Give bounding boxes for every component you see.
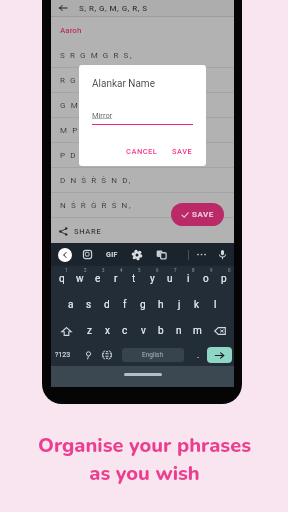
button[interactable]: More options: [195, 248, 208, 261]
staticText: SAVE: [192, 210, 214, 219]
button[interactable]: j: [170, 292, 188, 318]
button[interactable]: N Ṡ Ṙ Ġ Ṙ Ṡ N,: [51, 193, 234, 218]
button[interactable]: n: [170, 318, 188, 344]
staticText: 1: [65, 268, 68, 273]
button[interactable]: Back: [56, 1, 70, 15]
button[interactable]: y: [143, 266, 161, 292]
staticText: t: [132, 273, 136, 285]
staticText: w: [76, 273, 84, 285]
button[interactable]: t: [125, 266, 143, 292]
staticText: R G M P M G R,: [60, 76, 136, 85]
button[interactable]: a: [61, 292, 80, 318]
staticText: s: [86, 299, 92, 311]
button[interactable]: o: [197, 266, 215, 292]
staticText: u: [167, 273, 173, 285]
button[interactable]: l: [206, 292, 224, 318]
button[interactable]: Settings: [131, 249, 143, 261]
staticText: e: [95, 273, 101, 285]
button[interactable]: v: [134, 318, 152, 344]
button[interactable]: u: [161, 266, 179, 292]
staticText: q: [59, 273, 65, 285]
staticText: p: [221, 273, 227, 285]
button[interactable]: P D N Ṡ N D P,: [51, 143, 234, 168]
button[interactable]: English: [122, 348, 184, 362]
button[interactable]: .: [189, 344, 207, 366]
button[interactable]: Enter: [207, 347, 232, 363]
button[interactable]: f: [116, 292, 134, 318]
staticText: l: [214, 299, 217, 311]
staticText: j: [178, 299, 181, 311]
staticText: 0: [228, 268, 231, 273]
button[interactable]: Backspace: [206, 318, 233, 344]
button[interactable]: p: [215, 266, 233, 292]
staticText: f: [123, 299, 127, 311]
staticText: n: [176, 325, 182, 337]
button[interactable]: SAVE: [171, 203, 224, 226]
staticText: a: [68, 299, 74, 311]
staticText: SHARE: [74, 227, 102, 236]
staticText: r: [114, 273, 118, 285]
button[interactable]: h: [152, 292, 170, 318]
button[interactable]: Shift: [52, 318, 80, 344]
staticText: b: [158, 325, 164, 337]
button[interactable]: c: [116, 318, 134, 344]
staticText: S R G M G R S,: [60, 51, 134, 60]
staticText: 8: [192, 268, 195, 273]
button[interactable]: S R G M G R S,: [51, 43, 234, 68]
button[interactable]: D N Ṡ Ṙ Ṡ N D,: [51, 168, 234, 193]
button[interactable]: G M P D P M G,: [51, 93, 234, 118]
staticText: Alankar Name: [92, 78, 155, 90]
staticText: .: [197, 350, 200, 361]
button[interactable]: M P D N D P M,: [51, 118, 234, 143]
button[interactable]: Collapse keyboard: [58, 248, 72, 262]
button[interactable]: CANCEL: [123, 143, 161, 160]
button[interactable]: e: [89, 266, 107, 292]
button[interactable]: k: [188, 292, 206, 318]
button[interactable]: z: [80, 318, 98, 344]
button[interactable]: d: [98, 292, 116, 318]
staticText: GIF: [106, 251, 118, 259]
staticText: Mirror: [92, 111, 113, 120]
button[interactable]: Stickers: [82, 249, 93, 260]
staticText: as you wish: [89, 460, 200, 487]
button[interactable]: ?123: [51, 344, 74, 366]
staticText: G M P D P M G,: [60, 101, 137, 110]
button[interactable]: r: [107, 266, 125, 292]
staticText: 4: [120, 268, 123, 273]
staticText: 5: [138, 268, 141, 273]
staticText: P D N Ṡ N D P,: [60, 151, 132, 160]
staticText: g: [140, 299, 146, 311]
button[interactable]: Translate: [156, 249, 167, 260]
staticText: c: [122, 325, 128, 337]
staticText: SAVE: [172, 147, 193, 156]
staticText: h: [158, 299, 164, 311]
staticText: 3: [102, 268, 105, 273]
button[interactable]: b: [152, 318, 170, 344]
button[interactable]: SHARE: [51, 218, 234, 244]
staticText: m: [193, 325, 202, 337]
button[interactable]: m: [188, 318, 206, 344]
button[interactable]: SAVE: [169, 143, 196, 160]
staticText: English: [142, 351, 164, 359]
button[interactable]: x: [98, 318, 116, 344]
button[interactable]: g: [134, 292, 152, 318]
staticText: i: [187, 273, 190, 285]
staticText: D N Ṡ Ṙ Ṡ N D,: [60, 176, 132, 185]
staticText: Aaroh: [60, 26, 82, 35]
staticText: o: [203, 273, 209, 285]
staticText: y: [150, 273, 155, 285]
button[interactable]: Voice input: [217, 249, 228, 260]
button[interactable]: Change language: [98, 344, 116, 366]
button[interactable]: GIF: [106, 251, 118, 259]
button[interactable]: w: [71, 266, 89, 292]
button[interactable]: Emoji: [79, 344, 97, 366]
button[interactable]: R G M P M G R,: [51, 68, 234, 93]
button[interactable]: q: [52, 266, 71, 292]
staticText: CANCEL: [126, 147, 158, 156]
staticText: 9: [210, 268, 213, 273]
staticText: z: [87, 325, 92, 337]
staticText: v: [141, 325, 146, 337]
staticText: S, R, G, M, G, R, S: [79, 4, 148, 13]
button[interactable]: s: [80, 292, 98, 318]
button[interactable]: i: [179, 266, 197, 292]
